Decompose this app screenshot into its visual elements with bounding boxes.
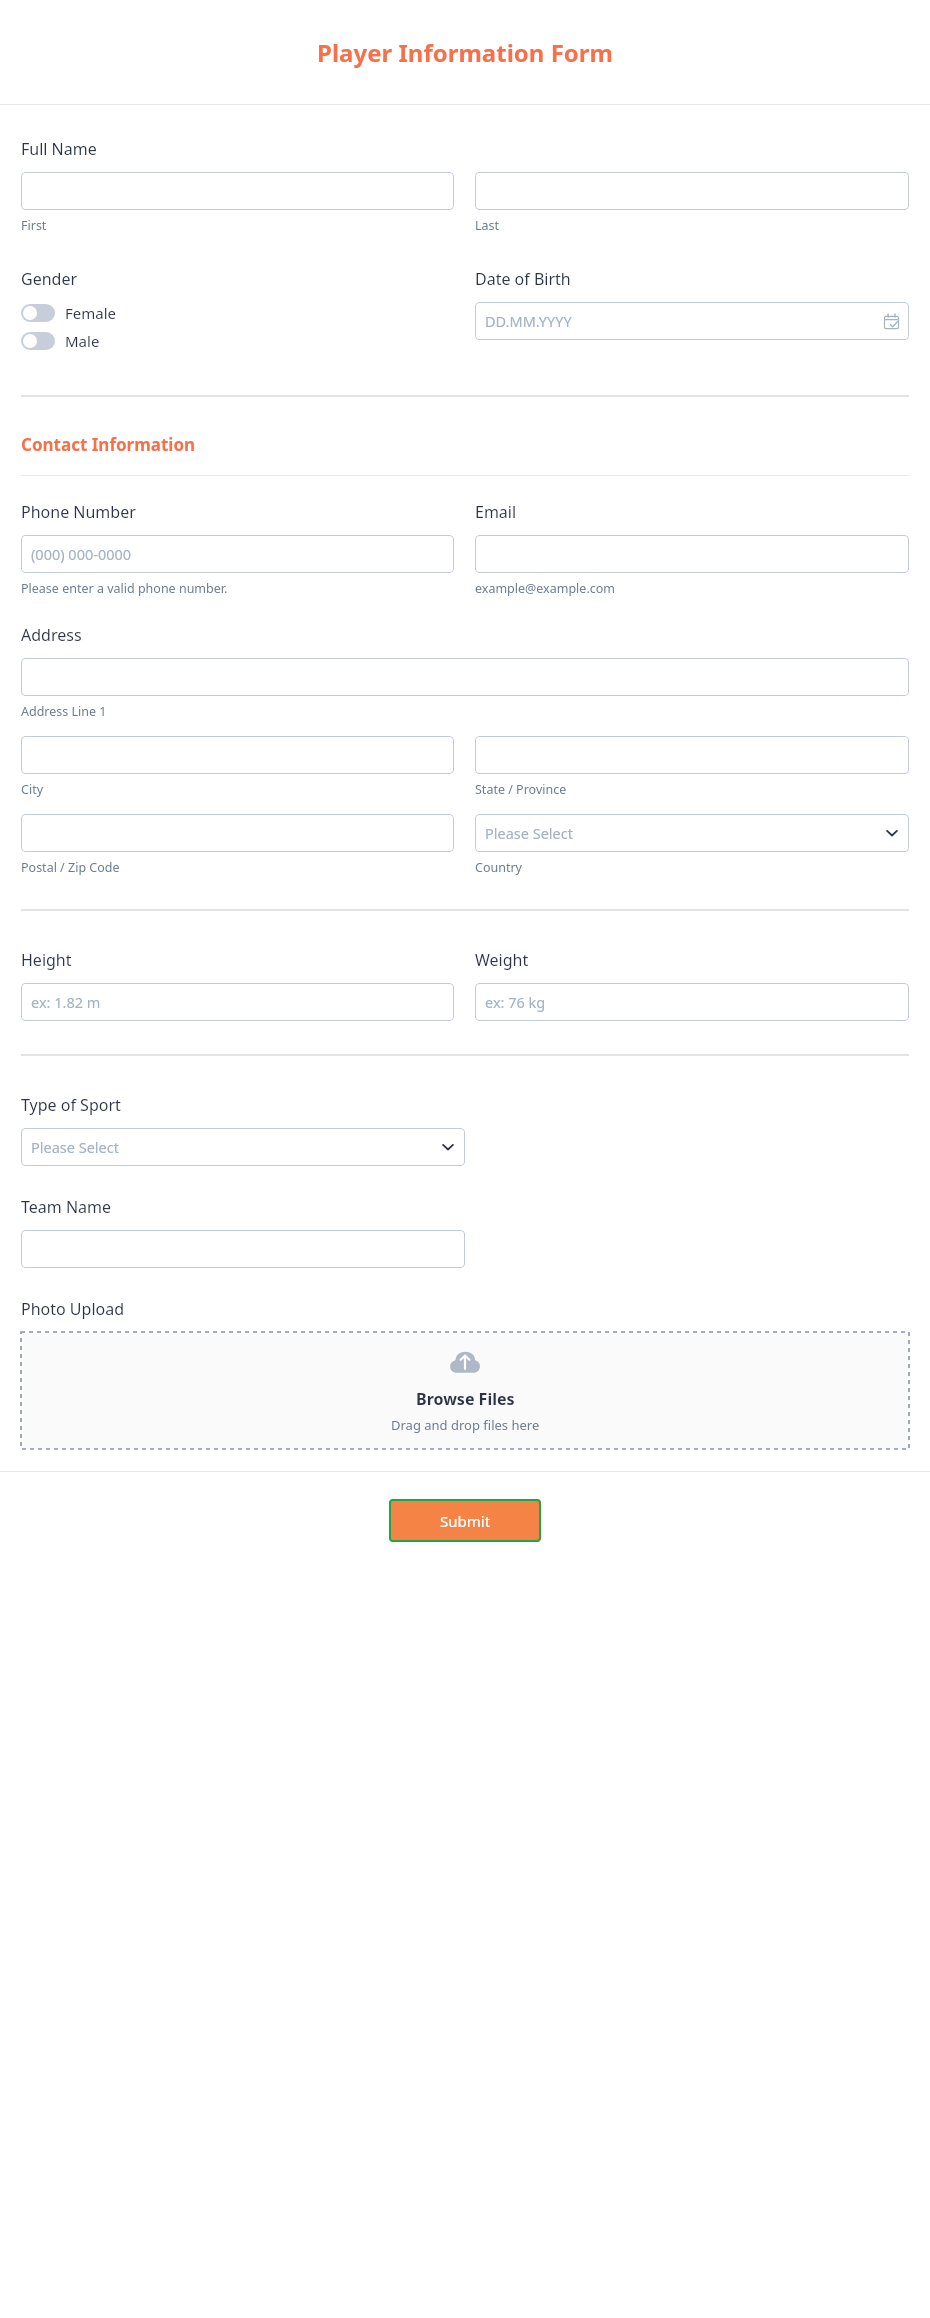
button[interactable] bbox=[475, 172, 909, 210]
button[interactable]: Submit bbox=[389, 1499, 541, 1542]
staticText: Type of Sport bbox=[21, 1094, 121, 1116]
staticText: Player Information Form bbox=[317, 36, 613, 69]
staticText: Browse Files bbox=[416, 1388, 515, 1410]
staticText: Team Name bbox=[21, 1196, 112, 1218]
button[interactable]: Please Select bbox=[475, 814, 909, 852]
button[interactable] bbox=[21, 172, 454, 210]
button[interactable]: ex: 76 kg bbox=[475, 983, 909, 1021]
other: Open list bbox=[441, 1140, 455, 1154]
staticText: Drag and drop files here bbox=[391, 1416, 540, 1434]
button[interactable]: Please Select bbox=[21, 1128, 465, 1166]
staticText: Phone Number bbox=[21, 501, 136, 523]
staticText: Gender bbox=[21, 268, 78, 290]
staticText: Address bbox=[21, 624, 82, 646]
staticText: Photo Upload bbox=[21, 1298, 125, 1320]
staticText: Please Select bbox=[31, 1137, 119, 1157]
button[interactable]: Male bbox=[21, 328, 100, 354]
button[interactable]: Browse files to upload bbox=[21, 1332, 909, 1449]
staticText: Contact Information bbox=[21, 433, 196, 456]
button[interactable]: ex: 1.82 m bbox=[21, 983, 454, 1021]
button[interactable] bbox=[21, 658, 909, 696]
staticText: Female bbox=[65, 303, 117, 323]
button[interactable]: (000) 000-0000 bbox=[21, 535, 454, 573]
staticText: Please Select bbox=[485, 823, 573, 843]
staticText: Last bbox=[475, 217, 500, 234]
staticText: Postal / Zip Code bbox=[21, 859, 120, 876]
staticText: Email bbox=[475, 501, 517, 523]
staticText: Height bbox=[21, 949, 72, 971]
staticText: ex: 76 kg bbox=[485, 992, 546, 1012]
button[interactable] bbox=[21, 1230, 465, 1268]
button[interactable] bbox=[21, 736, 454, 774]
button[interactable] bbox=[475, 736, 909, 774]
staticText: example@example.com bbox=[475, 580, 615, 597]
staticText: First bbox=[21, 217, 47, 234]
button[interactable]: Female bbox=[21, 300, 117, 326]
button[interactable] bbox=[21, 814, 454, 852]
staticText: ex: 1.82 m bbox=[31, 992, 101, 1012]
staticText: DD.MM.YYYY bbox=[485, 311, 572, 331]
staticText: (000) 000-0000 bbox=[31, 544, 132, 564]
staticText: Submit bbox=[440, 1511, 491, 1531]
staticText: Date of Birth bbox=[475, 268, 571, 290]
staticText: State / Province bbox=[475, 781, 567, 798]
staticText: Male bbox=[65, 331, 100, 351]
button[interactable]: DD.MM.YYYY bbox=[475, 302, 909, 340]
button[interactable] bbox=[475, 535, 909, 573]
staticText: Weight bbox=[475, 949, 529, 971]
staticText: Address Line 1 bbox=[21, 703, 107, 720]
staticText: Please enter a valid phone number. bbox=[21, 580, 228, 597]
staticText: Country bbox=[475, 859, 522, 876]
other: Pick date bbox=[884, 314, 899, 329]
staticText: City bbox=[21, 781, 44, 798]
other: Open list bbox=[885, 826, 899, 840]
staticText: Full Name bbox=[21, 138, 97, 160]
